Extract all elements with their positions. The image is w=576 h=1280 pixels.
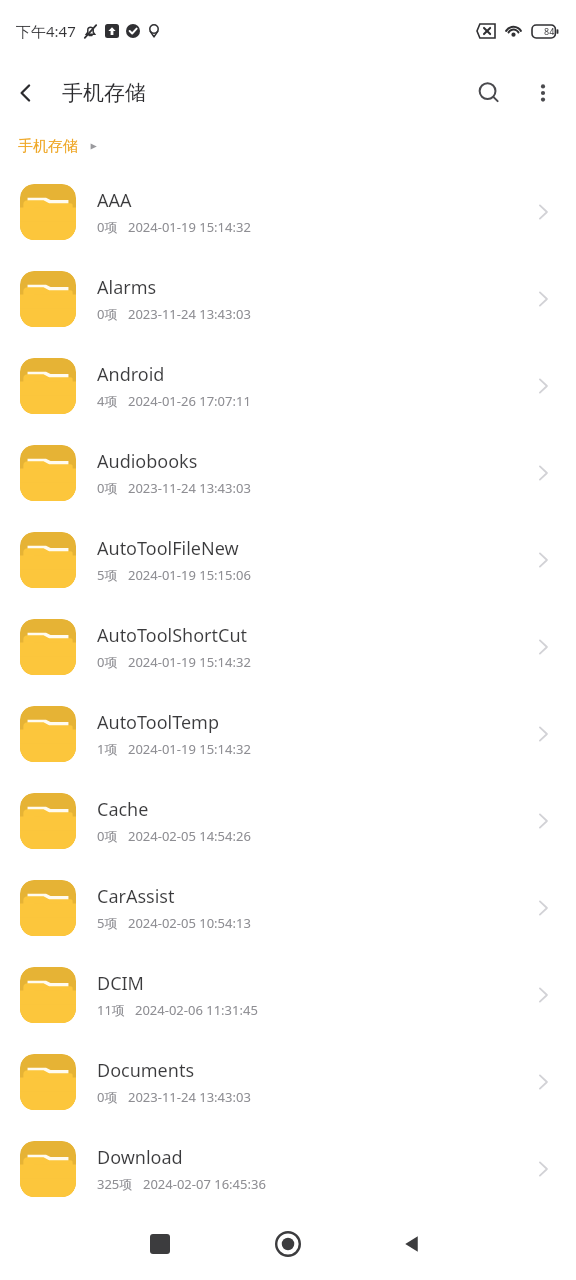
staticText: 0项 [97,305,118,323]
button[interactable]: 手机存储 [18,137,78,156]
button[interactable]: Alarms [0,255,576,342]
button[interactable]: Recent apps [134,1218,186,1270]
button[interactable]: CarAssist [0,864,576,951]
staticText: AAA [97,188,132,213]
staticText: 2024-02-07 16:45:36 [143,1175,266,1193]
staticText: 2024-01-19 15:14:32 [128,653,251,671]
staticText: 0项 [97,1088,118,1106]
staticText: 0项 [97,218,118,236]
staticText: Audiobooks [97,449,198,474]
staticText: Documents [97,1058,195,1083]
staticText: 手机存储 [62,80,146,106]
staticText: 0项 [97,653,118,671]
staticText: 下午4:47 [16,21,76,41]
staticText: 5项 [97,566,118,584]
staticText: 2023-11-24 13:43:03 [128,1088,251,1106]
button[interactable]: AutoToolTemp [0,690,576,777]
staticText: 0项 [97,479,118,497]
staticText: 2024-01-26 17:07:11 [128,392,251,410]
button[interactable]: AutoToolFileNew [0,516,576,603]
button[interactable]: Home [262,1218,314,1270]
staticText: 2024-02-06 11:31:45 [135,1001,258,1019]
button[interactable]: AAA [0,168,576,255]
staticText: DCIM [97,971,144,996]
staticText: 2024-01-19 15:14:32 [128,218,251,236]
button[interactable]: More options [516,66,570,120]
button[interactable]: Search [462,66,516,120]
staticText: CarAssist [97,884,175,909]
staticText: 2024-02-05 14:54:26 [128,827,251,845]
button[interactable]: Audiobooks [0,429,576,516]
staticText: AutoToolShortCut [97,623,248,648]
staticText: 手机存储 [18,137,78,156]
staticText: Download [97,1145,183,1170]
button[interactable]: AutoToolShortCut [0,603,576,690]
button[interactable]: DCIM [0,951,576,1038]
button[interactable]: Back [386,1218,438,1270]
staticText: 11项 [97,1001,125,1019]
button[interactable]: Cache [0,777,576,864]
staticText: 0项 [97,827,118,845]
staticText: 2024-02-05 10:54:13 [128,914,251,932]
staticText: 2023-11-24 13:43:03 [128,479,251,497]
staticText: 325项 [97,1175,133,1193]
staticText: 5项 [97,914,118,932]
staticText: AutoToolTemp [97,710,219,735]
staticText: 84 [544,25,555,37]
button[interactable]: Back [0,67,52,119]
button[interactable]: Documents [0,1038,576,1125]
staticText: Cache [97,797,149,822]
staticText: Android [97,362,165,387]
staticText: Alarms [97,275,157,300]
staticText: AutoToolFileNew [97,536,239,561]
button[interactable]: Android [0,342,576,429]
staticText: 2024-01-19 15:14:32 [128,740,251,758]
staticText: 4项 [97,392,118,410]
staticText: 2024-01-19 15:15:06 [128,566,251,584]
staticText: 2023-11-24 13:43:03 [128,305,251,323]
button[interactable]: Download [0,1125,576,1212]
staticText: 1项 [97,740,118,758]
